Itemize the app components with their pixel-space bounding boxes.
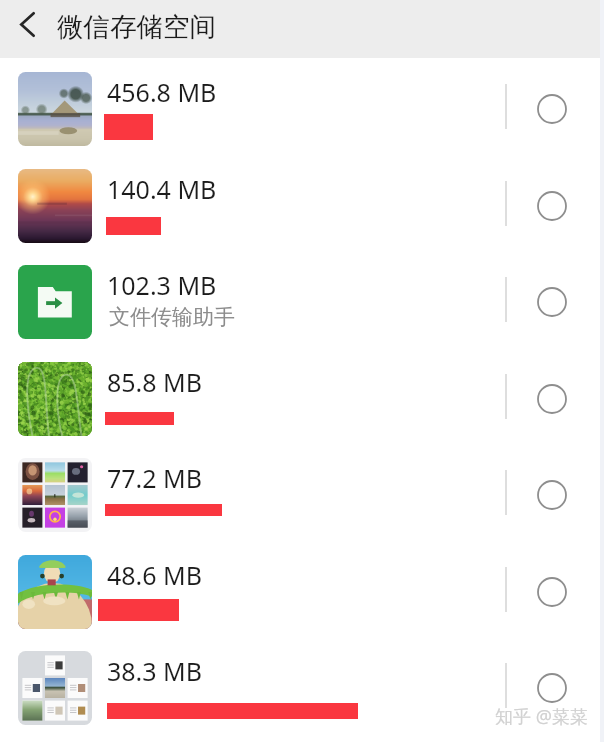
button[interactable]: 85.8 MB <box>0 348 604 445</box>
staticText: 140.4 MB <box>107 172 217 206</box>
button[interactable]: Select <box>530 666 574 710</box>
staticText: 文件传输助手 <box>109 304 235 330</box>
button[interactable]: 77.2 MB <box>0 444 604 541</box>
button[interactable]: 38.3 MB <box>0 637 604 734</box>
button[interactable]: Select <box>530 184 574 228</box>
button[interactable]: Select <box>530 87 574 131</box>
button[interactable]: 48.6 MB <box>0 541 604 638</box>
staticText: 38.3 MB <box>107 654 203 688</box>
staticText: 77.2 MB <box>107 461 203 495</box>
button[interactable]: 102.3 MB <box>0 251 604 348</box>
staticText: 85.8 MB <box>107 365 203 399</box>
staticText: 48.6 MB <box>107 558 203 592</box>
staticText: 456.8 MB <box>107 75 217 109</box>
button[interactable]: 140.4 MB <box>0 155 604 252</box>
staticText: 知乎 @菜菜 <box>495 704 588 729</box>
button[interactable]: Select <box>530 570 574 614</box>
button[interactable]: Select <box>530 280 574 324</box>
button[interactable]: Select <box>530 473 574 517</box>
staticText: 微信存储空间 <box>57 10 216 43</box>
staticText: 102.3 MB <box>107 268 217 302</box>
button[interactable]: Back <box>7 0 51 58</box>
button[interactable]: Select <box>530 377 574 421</box>
button[interactable]: 456.8 MB <box>0 58 604 155</box>
